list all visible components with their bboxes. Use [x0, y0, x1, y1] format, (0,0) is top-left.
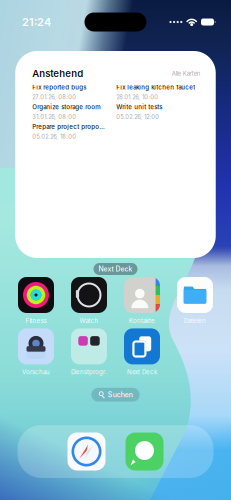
staticText: Suchen	[108, 390, 133, 399]
staticText: Alle Karten	[172, 70, 200, 77]
staticText: 27.01.26, 08:00	[32, 94, 76, 101]
staticText: Vorschau	[22, 368, 50, 376]
staticText: Fitness	[25, 317, 46, 324]
button[interactable]: Suchen	[91, 388, 140, 401]
button[interactable]: Fitness	[9, 277, 62, 324]
staticText: Write unit tests	[116, 103, 162, 111]
staticText: Fix leaking kitchen faucet	[116, 84, 195, 91]
staticText: 28.01.26, 10:00	[116, 94, 158, 101]
staticText: Next Deck	[98, 265, 132, 273]
staticText: 05.02.26, 18:00	[32, 133, 76, 140]
button[interactable]: Kontakte	[115, 277, 168, 324]
button[interactable]: Dateien	[168, 277, 221, 324]
button[interactable]: Next Deck	[115, 328, 168, 376]
button[interactable]: Safari	[67, 432, 105, 470]
staticText: Organize storage room	[32, 103, 100, 111]
staticText: Dateien	[184, 317, 206, 324]
staticText: Kontakte	[129, 317, 155, 324]
staticText: 05.02.26, 12:00	[116, 113, 159, 120]
staticText: Anstehend	[32, 68, 83, 79]
staticText: Next Deck	[127, 368, 157, 376]
button[interactable]: Watch	[62, 277, 115, 324]
staticText: 21:24	[22, 15, 51, 29]
button[interactable]: Dienstprogr.	[62, 328, 115, 376]
staticText: Prepare project propo…	[32, 123, 105, 130]
button[interactable]: Messages	[125, 432, 163, 470]
staticText: 31.01.26, 08:00	[32, 113, 76, 120]
staticText: Watch	[79, 317, 98, 324]
staticText: Dienstprogr.	[71, 368, 107, 376]
button[interactable]: Vorschau	[9, 328, 62, 376]
staticText: Fix reported bugs	[32, 84, 86, 91]
